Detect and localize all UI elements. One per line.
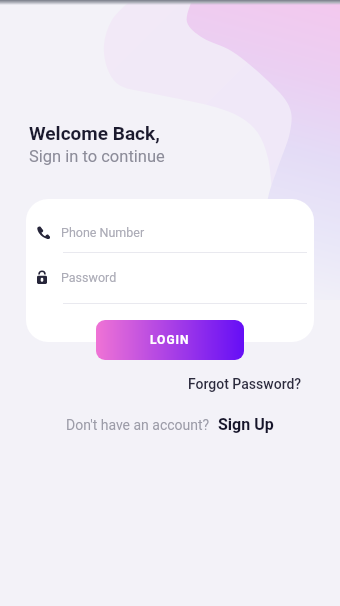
- button[interactable]: LOGIN: [96, 320, 244, 360]
- staticText: Welcome Back,: [29, 122, 160, 144]
- staticText: Don't have an account?: [66, 417, 210, 433]
- staticText: Forgot Password?: [188, 376, 302, 392]
- staticText: Sign in to continue: [29, 147, 165, 166]
- button[interactable]: Sign Up: [218, 415, 274, 434]
- staticText: Password: [61, 270, 117, 285]
- button[interactable]: Forgot Password?: [188, 376, 302, 392]
- staticText: Phone Number: [61, 225, 145, 240]
- staticText: Sign Up: [218, 415, 274, 434]
- staticText: LOGIN: [150, 333, 190, 347]
